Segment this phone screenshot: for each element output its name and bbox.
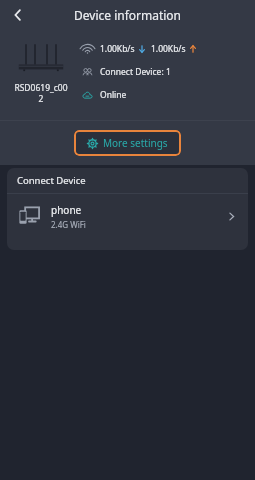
staticText: 1.00Kb/s (151, 43, 186, 55)
staticText: Online (100, 89, 127, 101)
staticText: 2.4G WiFi (51, 219, 86, 230)
staticText: Connect Device: 1 (100, 66, 171, 78)
button[interactable]: Back (4, 1, 32, 29)
staticText: 1.00Kb/s (100, 43, 135, 55)
staticText: Device information (74, 7, 182, 23)
staticText: More settings (103, 136, 168, 150)
button[interactable]: More settings (74, 130, 181, 156)
button[interactable]: phone (7, 194, 248, 238)
staticText: Connect Device (17, 174, 86, 187)
staticText: RSD0619_c002 (12, 82, 70, 104)
staticText: phone (51, 203, 82, 217)
